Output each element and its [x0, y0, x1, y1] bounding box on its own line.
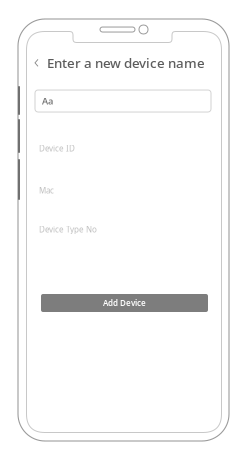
staticText: Aa: [42, 95, 53, 107]
staticText: Enter a new device name: [47, 54, 205, 72]
staticText: Device ID: [39, 143, 75, 154]
staticText: Mac: [39, 185, 54, 196]
button[interactable]: Aa: [35, 90, 211, 112]
staticText: Add Device: [103, 298, 146, 308]
button[interactable]: Add Device: [41, 294, 208, 312]
button[interactable]: Back: [34, 58, 39, 67]
staticText: Device Type No: [39, 224, 97, 235]
